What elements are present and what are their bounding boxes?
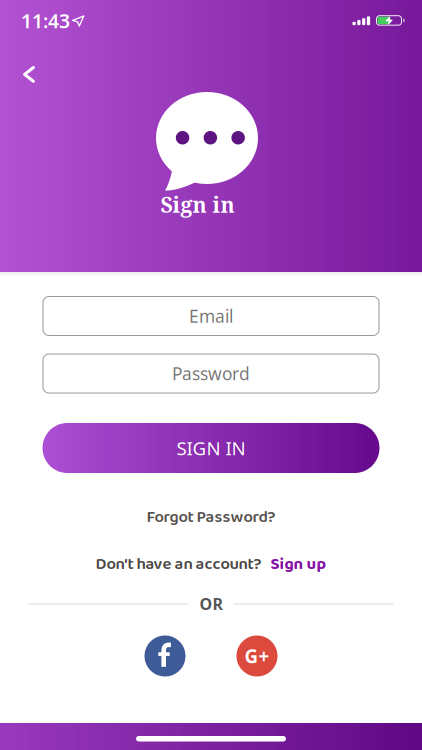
staticText: Email xyxy=(189,304,233,328)
button[interactable]: Forgot Password? xyxy=(0,504,422,531)
button[interactable]: SIGN IN xyxy=(42,423,379,473)
button[interactable]: Back xyxy=(0,59,44,89)
staticText: G+ xyxy=(244,643,269,669)
button[interactable]: Email xyxy=(42,296,379,336)
staticText: Password xyxy=(172,362,250,385)
staticText: OR xyxy=(199,593,222,615)
staticText: Sign up xyxy=(270,551,326,578)
button[interactable]: Password xyxy=(42,353,379,393)
staticText: 11:43 xyxy=(21,7,70,34)
button[interactable]: Sign in with Facebook xyxy=(144,635,185,676)
staticText: SIGN IN xyxy=(176,435,245,461)
staticText: Sign in xyxy=(160,190,234,219)
button[interactable]: Sign in with Google xyxy=(236,635,277,676)
staticText: Don’t have an account? xyxy=(95,551,261,578)
button[interactable]: Sign up xyxy=(270,551,326,578)
staticText: Forgot Password? xyxy=(146,504,275,531)
